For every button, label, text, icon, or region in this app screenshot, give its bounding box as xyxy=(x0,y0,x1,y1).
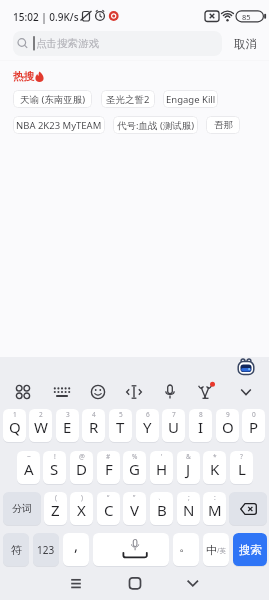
button[interactable]: , xyxy=(63,533,89,566)
staticText: 2 xyxy=(39,410,43,419)
staticText: 点击搜索游戏 xyxy=(36,37,99,50)
button[interactable] xyxy=(13,31,222,56)
staticText: ( xyxy=(55,493,57,502)
staticText: # xyxy=(106,452,111,461)
staticText: 。 xyxy=(179,538,192,554)
staticText: K xyxy=(210,459,220,479)
staticText: 1 xyxy=(13,410,17,419)
button[interactable]: 吾那 xyxy=(206,116,240,134)
button[interactable] xyxy=(173,566,213,600)
staticText: 中 xyxy=(206,543,217,557)
button[interactable]: : xyxy=(203,492,226,525)
button[interactable]: ' xyxy=(150,451,173,484)
button[interactable]: 取消 xyxy=(228,31,263,56)
staticText: , xyxy=(74,535,79,555)
button[interactable]: “ xyxy=(97,492,120,525)
button[interactable]: % xyxy=(123,451,146,484)
staticText: /英 xyxy=(217,546,226,555)
button[interactable]: 0 xyxy=(242,409,265,442)
button[interactable]: 、 xyxy=(150,492,173,525)
staticText: A xyxy=(24,459,34,479)
staticText: 天谕 (东南亚服) xyxy=(20,93,86,106)
staticText: W xyxy=(34,417,48,437)
button[interactable]: ( xyxy=(44,492,67,525)
button[interactable]: NBA 2K23 MyTEAM xyxy=(13,116,105,134)
staticText: D xyxy=(76,459,87,479)
button[interactable]: ” xyxy=(123,492,146,525)
staticText: Engage Kill xyxy=(166,93,216,106)
button[interactable]: 7 xyxy=(162,409,185,442)
staticText: Q xyxy=(9,417,21,437)
staticText: 分词 xyxy=(12,502,32,515)
staticText: 3 xyxy=(66,410,70,419)
button[interactable]: 2 xyxy=(29,409,52,442)
button[interactable]: 1 xyxy=(3,409,26,442)
button[interactable]: ~ xyxy=(17,451,40,484)
staticText: 5 xyxy=(119,410,123,419)
button[interactable]: ? xyxy=(230,451,253,484)
button[interactable] xyxy=(229,492,267,525)
staticText: J xyxy=(186,459,191,479)
button[interactable]: 搜索 xyxy=(233,533,267,566)
button[interactable]: 6 xyxy=(136,409,159,442)
button[interactable]: ! xyxy=(43,451,66,484)
button[interactable]: 圣光之誓2 xyxy=(101,90,155,108)
button[interactable]: ; xyxy=(177,492,200,525)
staticText: * xyxy=(213,452,217,461)
button[interactable]: 5 xyxy=(109,409,132,442)
staticText: N xyxy=(183,500,195,520)
staticText: 4 xyxy=(92,410,96,419)
button[interactable]: 代号:血战 (测试服) xyxy=(113,116,198,134)
staticText: R xyxy=(89,417,99,437)
staticText: 圣光之誓2 xyxy=(106,93,150,106)
staticText: Z xyxy=(51,500,60,520)
button[interactable]: 3 xyxy=(56,409,79,442)
staticText: 85 xyxy=(242,12,251,22)
staticText: 6 xyxy=(146,410,150,419)
button[interactable]: 符 xyxy=(3,533,29,566)
staticText: Y xyxy=(143,417,152,437)
staticText: : xyxy=(214,493,216,502)
staticText: ! xyxy=(54,452,56,461)
staticText: 代号:血战 (测试服) xyxy=(117,119,195,132)
button[interactable]: 8 xyxy=(189,409,212,442)
staticText: I xyxy=(198,417,204,437)
button[interactable]: 。 xyxy=(173,533,199,566)
staticText: S xyxy=(50,459,59,479)
staticText: 符 xyxy=(11,543,22,557)
staticText: P xyxy=(249,417,259,437)
button[interactable] xyxy=(56,566,96,600)
button[interactable]: 中 xyxy=(203,533,229,566)
staticText: % xyxy=(132,452,138,461)
staticText: F xyxy=(105,459,113,479)
button[interactable]: @ xyxy=(70,451,93,484)
staticText: G xyxy=(129,459,140,479)
staticText: M xyxy=(208,500,222,520)
staticText: U xyxy=(168,417,179,437)
staticText: C xyxy=(104,500,114,520)
staticText: 吾那 xyxy=(214,119,233,131)
button[interactable]: 4 xyxy=(82,409,105,442)
button[interactable]: & xyxy=(177,451,200,484)
staticText: O xyxy=(222,417,234,437)
button[interactable]: ) xyxy=(70,492,93,525)
staticText: ; xyxy=(188,493,190,502)
button[interactable]: Engage Kill xyxy=(163,90,218,108)
button[interactable] xyxy=(115,566,155,600)
staticText: 7 xyxy=(172,410,176,419)
button[interactable]: 天谕 (东南亚服) xyxy=(13,90,92,108)
button[interactable]: 123 xyxy=(33,533,59,566)
staticText: 热搜 xyxy=(13,70,34,83)
staticText: @ xyxy=(79,452,85,461)
button[interactable]: 分词 xyxy=(3,492,41,525)
staticText: 15:02 | 0.9K/s xyxy=(13,10,79,24)
staticText: 搜索 xyxy=(239,543,262,557)
button[interactable] xyxy=(93,533,169,566)
button[interactable]: 9 xyxy=(216,409,239,442)
button[interactable]: * xyxy=(203,451,226,484)
button[interactable]: # xyxy=(97,451,120,484)
staticText: 0 xyxy=(252,410,256,419)
staticText: “ xyxy=(107,493,110,502)
staticText: NBA 2K23 MyTEAM xyxy=(16,119,102,132)
staticText: 123 xyxy=(37,543,55,557)
